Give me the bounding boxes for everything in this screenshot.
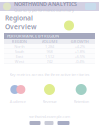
staticText: PERFORMANCE BY REGION: [7, 33, 59, 39]
staticText: North: [14, 44, 24, 49]
button[interactable]: Print: [44, 121, 53, 125]
staticText: East: [16, 54, 23, 59]
staticText: -0.4%: [75, 59, 84, 64]
staticText: 968: [46, 49, 52, 54]
staticText: Quarterly performance summary: [14, 7, 74, 13]
staticText: Key metrics across the three active terr…: [9, 72, 89, 77]
staticText: South: [15, 49, 24, 54]
button[interactable]: Retention: [65, 84, 97, 95]
staticText: NORTHWIND ANALYTICS: [14, 0, 77, 7]
staticText: Revenue: [42, 99, 56, 104]
button[interactable]: Audience: [2, 85, 34, 94]
button[interactable]: Download: [57, 121, 69, 125]
button[interactable]: Revenue: [34, 84, 65, 95]
staticText: Retention: [74, 99, 89, 104]
staticText: 742: [46, 59, 52, 64]
staticText: northwind.example.com: [28, 114, 70, 119]
staticText: +6.5%: [75, 54, 85, 59]
staticText: VOLUME: [41, 39, 57, 44]
staticText: 1,284: [45, 44, 54, 49]
staticText: Audience: [10, 99, 26, 104]
staticText: 1,512: [45, 54, 54, 59]
staticText: +1.8%: [75, 49, 85, 54]
button[interactable]: Report header: [0, 2, 99, 11]
staticText: GROWTH: [71, 39, 89, 44]
staticText: West: [15, 59, 24, 64]
staticText: +4.2%: [75, 44, 85, 49]
staticText: Updated 12 March: [5, 32, 37, 37]
staticText: Regional Overview: [5, 13, 37, 31]
staticText: REGION: [12, 39, 27, 44]
